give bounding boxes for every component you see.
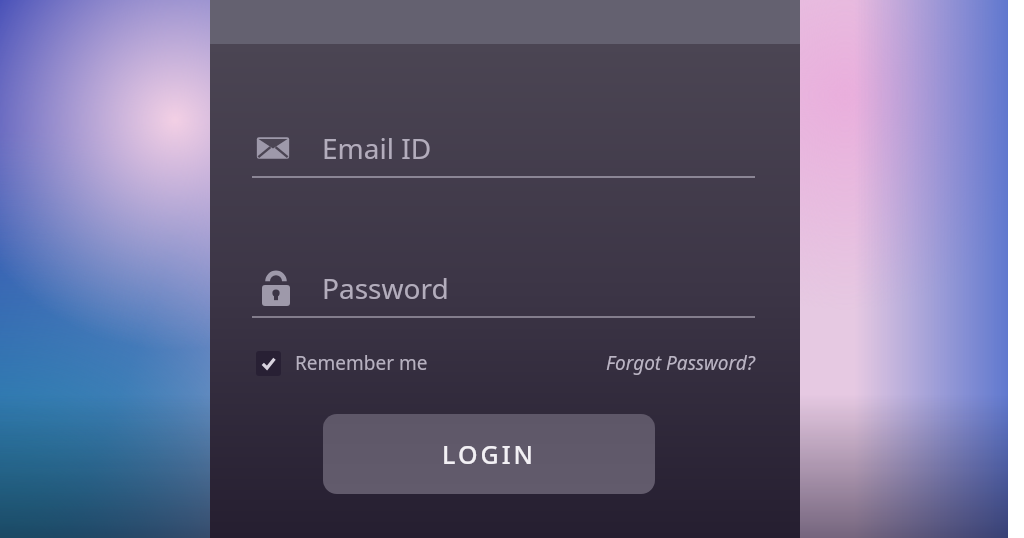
staticText: Password: [322, 269, 449, 307]
button[interactable]: LOGIN: [323, 414, 655, 494]
staticText: Remember me: [295, 350, 428, 376]
staticText: Email ID: [322, 129, 432, 167]
staticText: LOGIN: [442, 437, 536, 471]
button[interactable]: Remember me: [256, 350, 428, 376]
button[interactable]: Forgot Password?: [606, 350, 755, 376]
staticText: Forgot Password?: [606, 350, 755, 376]
button[interactable]: Password: [210, 260, 800, 316]
button[interactable]: Email ID: [210, 120, 800, 176]
